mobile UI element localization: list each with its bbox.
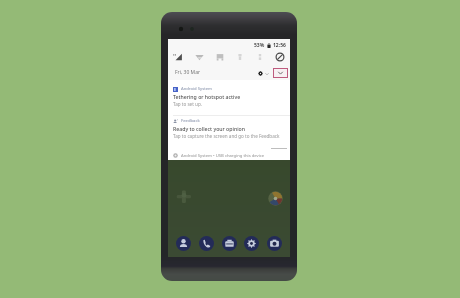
button[interactable]: Messages <box>222 236 237 251</box>
button[interactable]: Camera <box>267 236 282 251</box>
button[interactable]: Android System • USB charging this devic… <box>168 151 290 160</box>
button[interactable]: Settings <box>244 236 259 251</box>
button[interactable]: Do not disturb <box>270 49 290 65</box>
staticText: Android System • USB charging this devic… <box>181 153 265 159</box>
button[interactable]: Play Store <box>176 189 192 205</box>
button[interactable]: Contacts <box>176 236 191 251</box>
staticText: Feedback <box>181 118 200 124</box>
staticText: Fri, 30 Mar <box>175 69 201 76</box>
staticText: Android System <box>181 86 212 92</box>
button[interactable]: Expand notifications <box>273 68 288 78</box>
staticText: 12:56 <box>273 42 286 49</box>
button[interactable]: Battery saver <box>210 49 230 65</box>
button[interactable]: Photos <box>268 191 283 206</box>
button[interactable]: Flashlight <box>230 49 250 65</box>
button[interactable]: Android System <box>168 86 290 112</box>
button[interactable]: Auto-rotate <box>250 49 270 65</box>
button[interactable]: Mobile data <box>168 49 189 65</box>
button[interactable]: Phone <box>199 236 214 251</box>
staticText: 53% <box>254 42 265 49</box>
staticText: Ready to collect your opinion <box>173 125 245 132</box>
button[interactable]: Settings <box>256 69 264 77</box>
staticText: Tethering or hotspot active <box>173 93 241 100</box>
staticText: Tap to set up. <box>173 101 202 107</box>
button[interactable]: Feedback <box>168 118 290 144</box>
staticText: Tap to capture the screen and go to the … <box>173 133 280 139</box>
button[interactable]: Wi-Fi <box>189 49 210 65</box>
